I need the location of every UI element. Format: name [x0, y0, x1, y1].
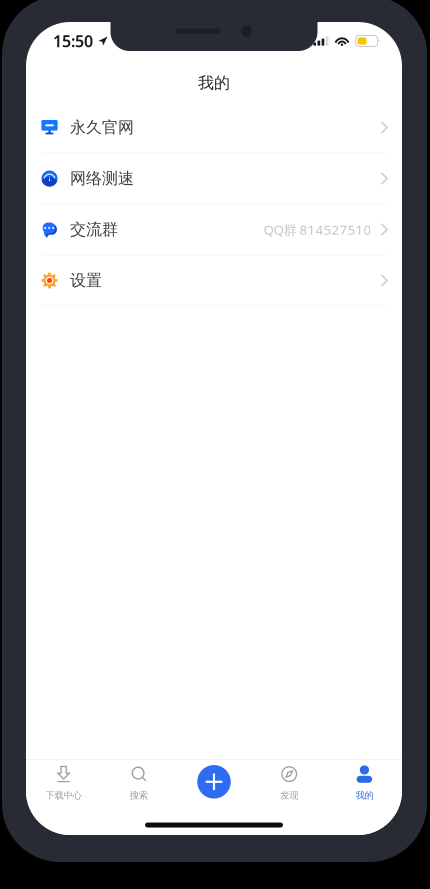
button[interactable]: 发现 — [252, 762, 327, 802]
staticText: 我的 — [355, 790, 373, 801]
button[interactable]: 设置 — [26, 255, 402, 305]
staticText: 发现 — [280, 790, 298, 801]
staticText: 设置 — [70, 271, 102, 290]
staticText: 交流群 — [70, 220, 118, 239]
staticText: 下载中心 — [46, 790, 82, 801]
button[interactable]: 搜索 — [101, 762, 176, 802]
staticText: 永久官网 — [70, 118, 134, 137]
button[interactable]: 网络测速 — [26, 153, 402, 203]
button[interactable]: Add — [176, 762, 252, 802]
button[interactable]: 交流群 — [26, 204, 402, 254]
staticText: 搜索 — [130, 790, 148, 801]
button[interactable]: 我的 — [327, 762, 402, 802]
button[interactable]: 永久官网 — [26, 102, 402, 152]
staticText: 我的 — [198, 73, 230, 93]
staticText: QQ群 814527510 — [263, 221, 371, 238]
staticText: 15:50 — [53, 30, 93, 52]
button[interactable]: 下载中心 — [26, 762, 101, 802]
staticText: 网络测速 — [70, 169, 134, 188]
